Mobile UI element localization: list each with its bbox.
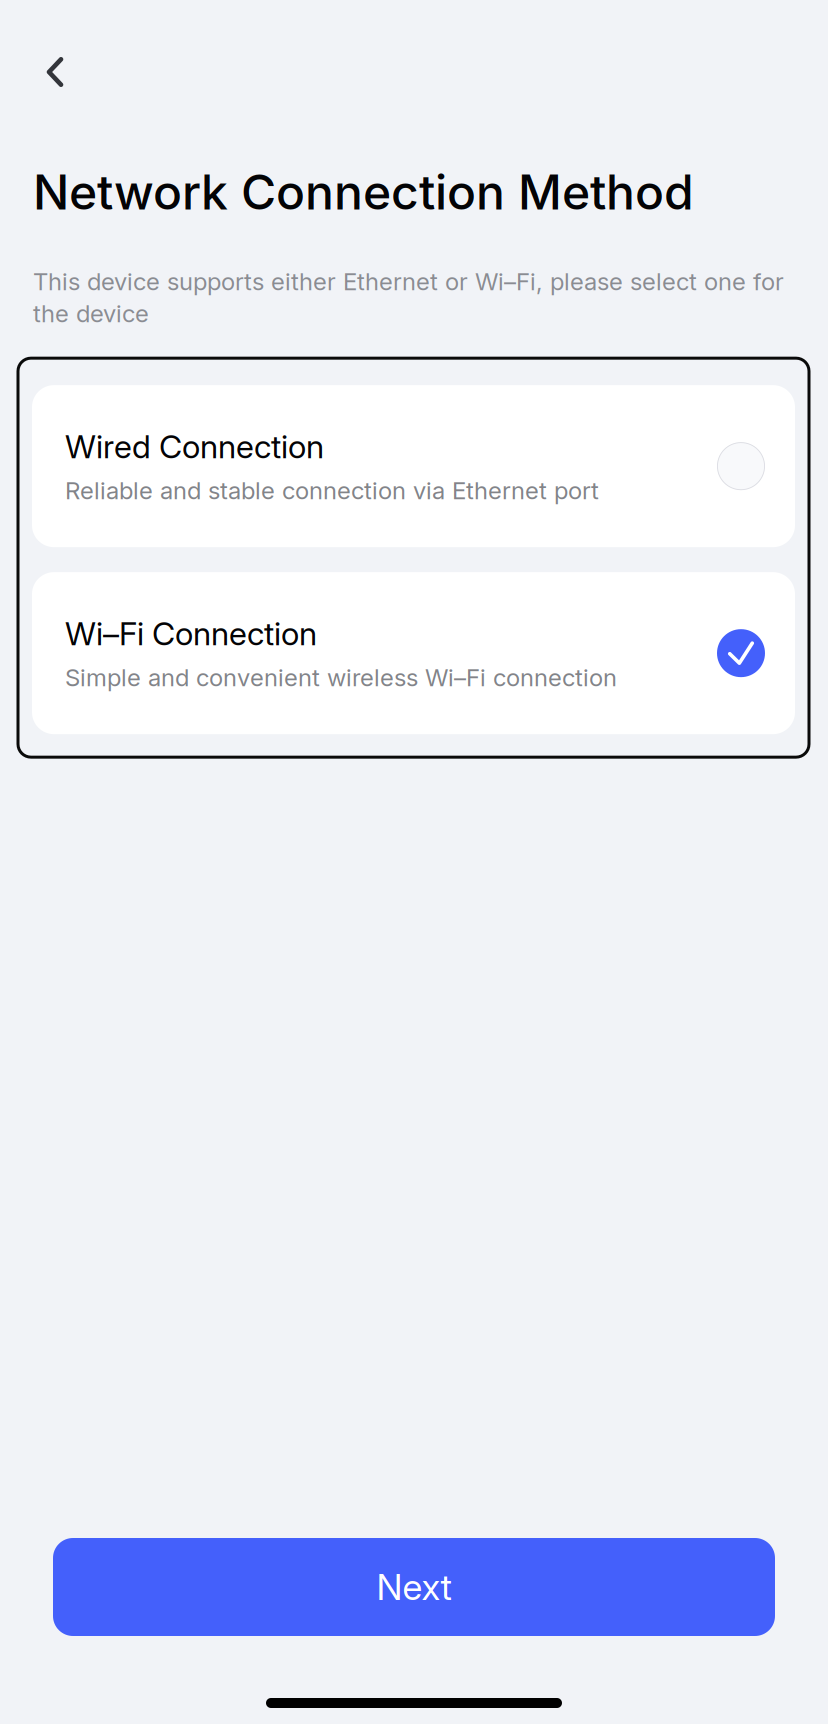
button[interactable]: Wired Connection xyxy=(32,385,795,547)
staticText: Wi–Fi Connection xyxy=(65,614,317,653)
button[interactable]: Next xyxy=(53,1538,775,1636)
staticText: Next xyxy=(376,1565,451,1609)
staticText: Network Connection Method xyxy=(33,163,694,221)
staticText: Reliable and stable connection via Ether… xyxy=(65,476,599,505)
staticText: This device supports either Ethernet or … xyxy=(33,267,784,328)
staticText: Simple and convenient wireless Wi–Fi con… xyxy=(65,663,617,692)
button[interactable]: Back xyxy=(27,44,83,100)
staticText: Wired Connection xyxy=(65,427,324,466)
button[interactable]: Wi–Fi Connection xyxy=(32,572,795,734)
